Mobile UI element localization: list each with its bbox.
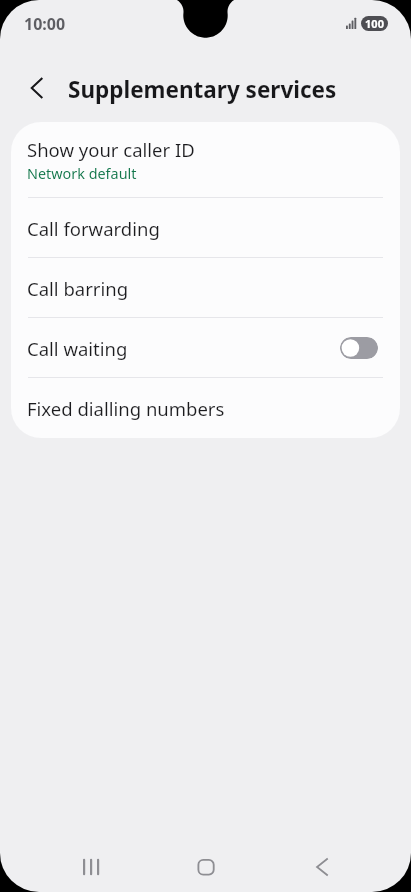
button[interactable]: Call barring [11, 258, 400, 318]
staticText: Supplementary services [68, 74, 337, 105]
staticText: Call waiting [27, 336, 340, 361]
button[interactable]: Back [299, 844, 345, 890]
staticText: Network default [27, 164, 137, 184]
staticText: Call barring [27, 276, 129, 301]
button[interactable]: Call waiting [11, 318, 400, 378]
button[interactable]: Call forwarding [11, 198, 400, 258]
button[interactable]: Home [183, 844, 229, 890]
staticText: Fixed dialling numbers [27, 396, 225, 421]
button[interactable]: Show your caller ID [11, 122, 400, 198]
button[interactable]: Fixed dialling numbers [11, 378, 400, 438]
staticText: Call forwarding [27, 216, 160, 241]
button[interactable]: Navigate up [14, 65, 60, 111]
button[interactable]: Recent apps [68, 844, 114, 890]
staticText: 10:00 [24, 13, 66, 35]
button[interactable]: Call waiting, off [340, 337, 378, 359]
staticText: Show your caller ID [27, 137, 195, 162]
staticText: 100 [365, 16, 384, 31]
